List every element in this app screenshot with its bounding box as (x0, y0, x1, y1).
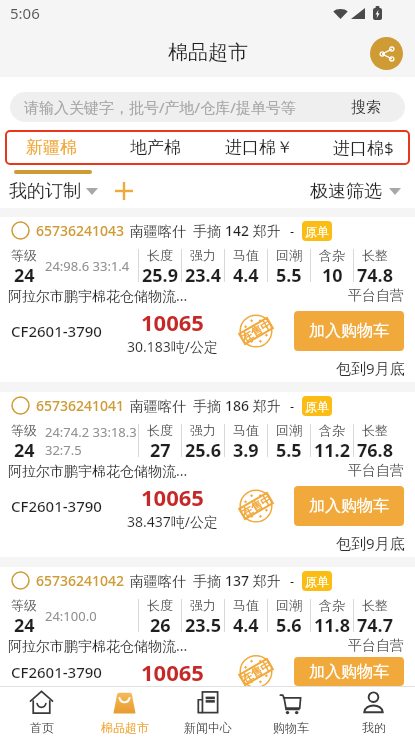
button[interactable]: Share (370, 37, 403, 70)
staticText: 平台自营 (348, 287, 404, 305)
staticText: 新疆棉 (26, 137, 77, 158)
staticText: 马值 (233, 597, 259, 613)
staticText: 24:74.2 33:18.3 (45, 423, 137, 441)
staticText: 原单 (305, 399, 329, 414)
button[interactable]: 进口棉￥ (207, 130, 311, 165)
staticText: 27 (150, 438, 171, 459)
button[interactable]: 我的订制 (9, 180, 98, 203)
button[interactable]: Add custom (110, 177, 138, 205)
staticText: 首页 (30, 720, 54, 735)
button[interactable]: 极速筛选 (310, 180, 401, 203)
staticText: - (290, 222, 295, 240)
staticText: 阿拉尔市鹏宇棉花仓储物流... (8, 636, 188, 655)
staticText: 10065 (141, 482, 204, 512)
staticText: 长度 (147, 422, 173, 438)
staticText: 4.4 (233, 613, 259, 634)
staticText: 进口棉$ (333, 136, 394, 159)
staticText: 等级 (11, 422, 37, 438)
staticText: 购物车 (273, 720, 309, 735)
button[interactable]: Select item (5, 567, 36, 594)
staticText: - (290, 397, 295, 415)
staticText: 包到9月底 (336, 533, 405, 553)
button[interactable]: Select item (5, 217, 36, 244)
button[interactable]: 新闻中心 (166, 687, 249, 738)
button[interactable]: 地产棉 (103, 130, 207, 165)
staticText: 回潮 (276, 247, 302, 263)
staticText: 南疆喀什 手摘 186 郑升 (130, 396, 281, 415)
staticText: 24:98.6 33:1.4 (45, 257, 130, 275)
staticText: 强力 (190, 422, 216, 438)
staticText: 在售中 (239, 316, 274, 345)
staticText: 含杂 (319, 247, 345, 263)
staticText: 65736241043 (36, 221, 125, 240)
staticText: 加入购物车 (309, 321, 389, 341)
button[interactable]: 请输入关键字，批号/产地/仓库/提单号等 (10, 92, 405, 122)
staticText: 我的 (362, 720, 386, 735)
staticText: 5:06 (10, 3, 40, 23)
staticText: 马值 (233, 422, 259, 438)
button[interactable]: 进口棉$ (311, 130, 415, 165)
staticText: 10 (322, 263, 343, 284)
staticText: 10065 (141, 307, 204, 337)
button[interactable]: 棉品超市 (83, 687, 166, 738)
staticText: CF2601-3790 (11, 321, 102, 341)
staticText: 在售中 (239, 657, 274, 686)
staticText: 包到9月底 (336, 358, 405, 378)
staticText: 长整 (362, 247, 388, 263)
staticText: 25.6 (185, 438, 221, 459)
staticText: 强力 (190, 247, 216, 263)
staticText: 地产棉 (130, 137, 181, 158)
button[interactable]: 购物车 (249, 687, 332, 738)
staticText: 搜索 (351, 98, 381, 117)
staticText: 24:100.0 (45, 607, 97, 625)
staticText: 阿拉尔市鹏宇棉花仓储物流... (8, 286, 188, 305)
staticText: 等级 (11, 597, 37, 613)
staticText: 11.8 (314, 613, 350, 634)
staticText: 棉品超市 (168, 40, 248, 65)
staticText: 26 (150, 613, 171, 634)
staticText: 3.9 (233, 438, 259, 459)
staticText: 加入购物车 (309, 662, 389, 682)
staticText: 4.4 (233, 263, 259, 284)
staticText: 76.8 (357, 438, 393, 459)
staticText: 我的订制 (9, 180, 81, 203)
staticText: CF2601-3790 (11, 496, 102, 516)
staticText: 原单 (305, 574, 329, 589)
staticText: 含杂 (319, 422, 345, 438)
staticText: 棉品超市 (101, 720, 149, 735)
staticText: 阿拉尔市鹏宇棉花仓储物流... (8, 461, 188, 480)
button[interactable]: Select item (5, 392, 36, 419)
button[interactable]: 首页 (0, 687, 83, 738)
staticText: 原单 (305, 224, 329, 239)
staticText: 5.5 (276, 263, 302, 284)
staticText: CF2601-3790 (11, 662, 102, 682)
staticText: 74.7 (357, 613, 393, 634)
staticText: 长度 (147, 247, 173, 263)
staticText: 11.2 (314, 438, 350, 459)
staticText: 65736241042 (36, 571, 125, 590)
button[interactable]: 加入购物车 (294, 657, 404, 686)
staticText: 5.6 (276, 613, 302, 634)
staticText: 24 (14, 438, 35, 459)
button[interactable]: 加入购物车 (294, 311, 404, 351)
button[interactable]: 我的 (332, 687, 415, 738)
button[interactable]: 加入购物车 (294, 486, 404, 526)
staticText: 74.8 (357, 263, 393, 284)
staticText: 长整 (362, 597, 388, 613)
staticText: 等级 (11, 247, 37, 263)
staticText: - (290, 572, 295, 590)
staticText: 回潮 (276, 422, 302, 438)
button[interactable]: 新疆棉 (0, 130, 103, 165)
staticText: 30.183吨/公定 (127, 337, 218, 354)
staticText: 加入购物车 (309, 496, 389, 516)
staticText: 23.4 (185, 263, 221, 284)
staticText: 马值 (233, 247, 259, 263)
staticText: 24 (14, 613, 35, 634)
staticText: 长度 (147, 597, 173, 613)
staticText: 强力 (190, 597, 216, 613)
staticText: 极速筛选 (310, 180, 382, 203)
staticText: 新闻中心 (184, 720, 232, 735)
staticText: 回潮 (276, 597, 302, 613)
staticText: 进口棉￥ (225, 137, 293, 158)
staticText: 32:7.5 (45, 441, 82, 459)
